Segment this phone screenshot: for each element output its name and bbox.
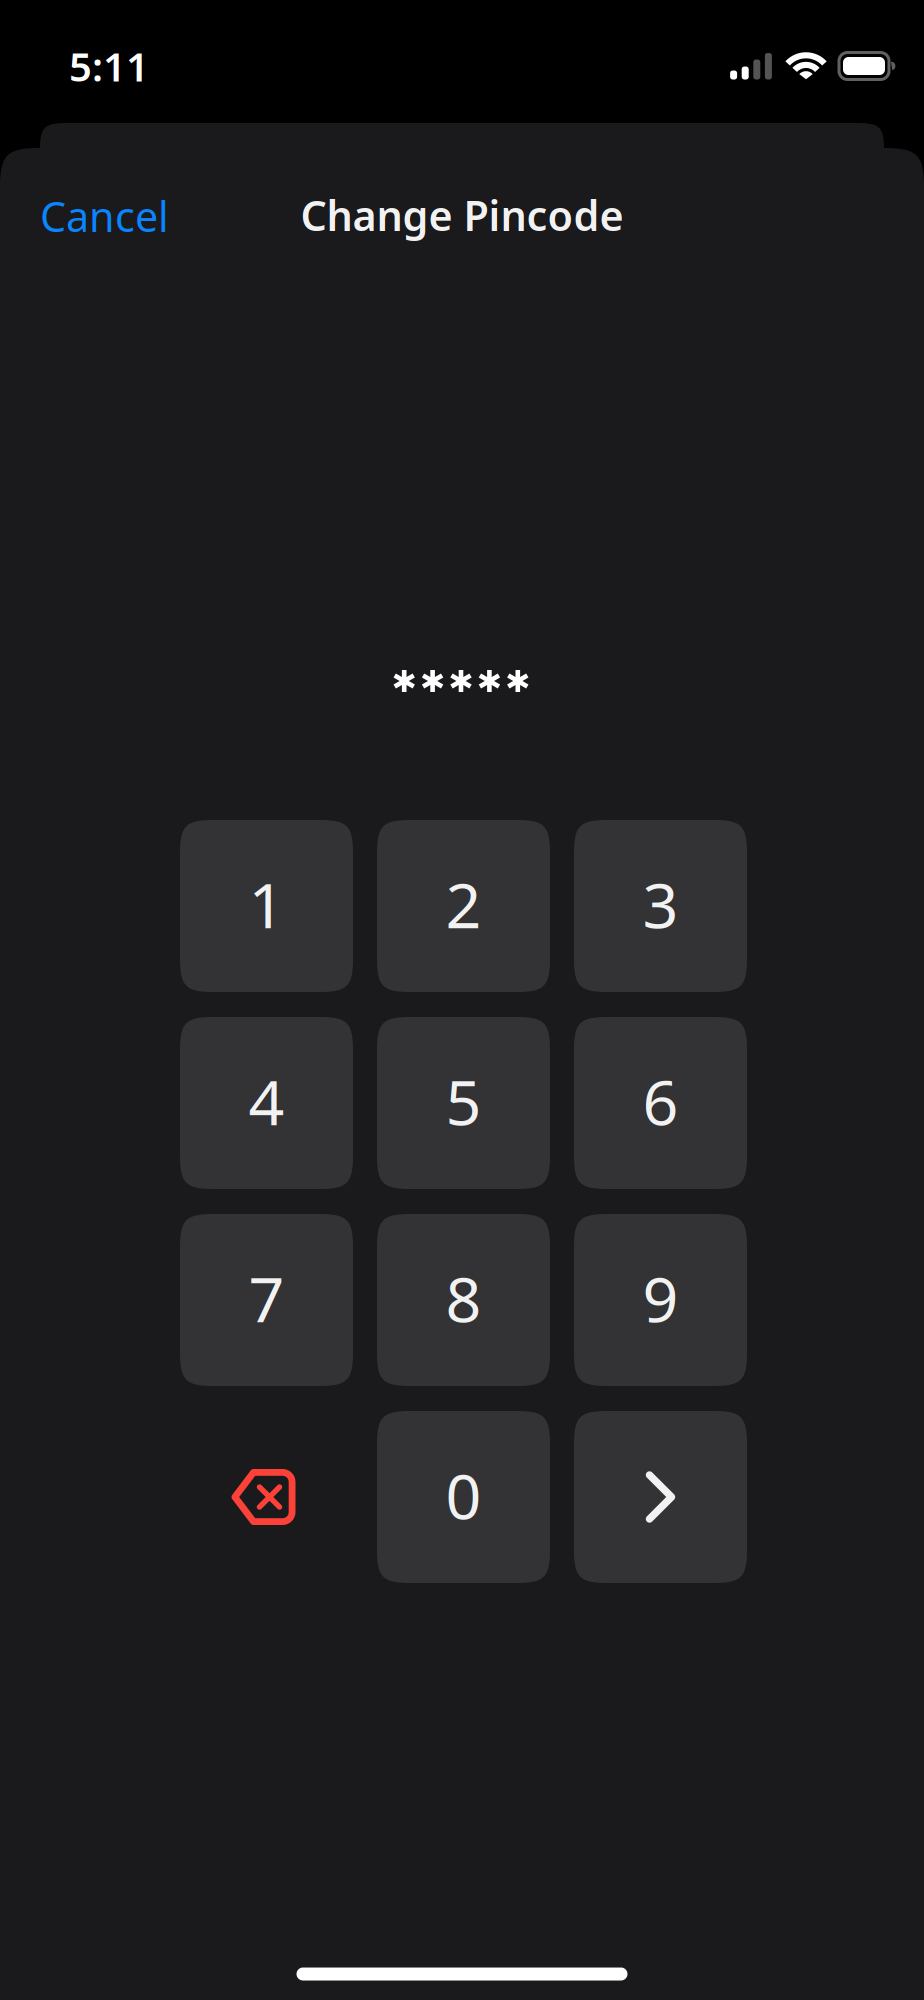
button[interactable]: Delete xyxy=(177,1411,350,1583)
staticText: Cancel xyxy=(40,189,169,243)
button[interactable]: 4 xyxy=(180,1017,353,1189)
staticText: 4 xyxy=(248,1059,284,1143)
staticText: 7 xyxy=(248,1256,284,1340)
button[interactable]: 7 xyxy=(180,1214,353,1386)
button[interactable]: 2 xyxy=(377,820,550,992)
button[interactable]: 1 xyxy=(180,820,353,992)
button[interactable]: 5 xyxy=(377,1017,550,1189)
staticText: 3 xyxy=(642,862,678,946)
button[interactable]: 9 xyxy=(574,1214,747,1386)
button[interactable]: 3 xyxy=(574,820,747,992)
staticText: Change Pincode xyxy=(300,188,623,242)
button[interactable]: 0 xyxy=(377,1411,550,1583)
button[interactable]: Continue xyxy=(574,1411,747,1583)
button[interactable]: 8 xyxy=(377,1214,550,1386)
staticText: 5:11 xyxy=(69,39,149,92)
staticText: 6 xyxy=(642,1059,678,1143)
staticText: 5 xyxy=(445,1059,481,1143)
staticText: 2 xyxy=(445,862,481,946)
button[interactable]: Cancel xyxy=(40,179,172,253)
button[interactable]: 6 xyxy=(574,1017,747,1189)
staticText: 0 xyxy=(445,1453,481,1537)
staticText: 8 xyxy=(445,1256,481,1340)
staticText: 1 xyxy=(248,862,284,946)
staticText: 9 xyxy=(642,1256,678,1340)
